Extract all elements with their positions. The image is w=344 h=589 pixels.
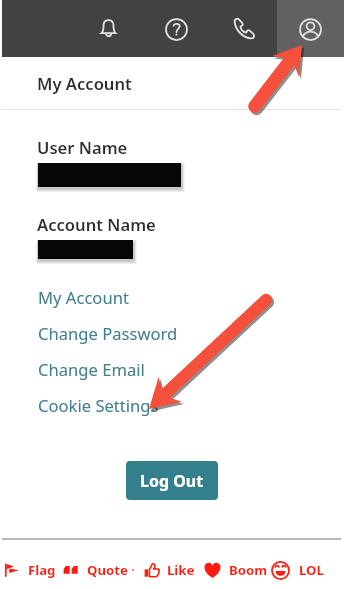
- staticText: My Account: [37, 72, 132, 95]
- button[interactable]: LOL: [271, 557, 324, 583]
- button[interactable]: Quote: [63, 557, 128, 583]
- staticText: Boom: [229, 561, 268, 579]
- button[interactable]: Cookie Settings: [28, 390, 169, 421]
- button[interactable]: Like: [144, 557, 195, 583]
- staticText: Log Out: [140, 470, 204, 492]
- button[interactable]: Account: [276, 0, 344, 57]
- staticText: Flag: [28, 561, 56, 579]
- staticText: ·: [131, 560, 135, 579]
- staticText: Change Email: [38, 358, 145, 381]
- staticText: My Account: [38, 286, 129, 309]
- staticText: Like: [167, 561, 195, 579]
- button[interactable]: My Account: [28, 282, 139, 313]
- staticText: User Name: [37, 136, 128, 159]
- staticText: Cookie Settings: [38, 394, 159, 417]
- button[interactable]: Call: [209, 0, 277, 57]
- button[interactable]: Log Out: [126, 461, 218, 500]
- button[interactable]: Flag: [4, 557, 56, 583]
- staticText: LOL: [299, 561, 324, 579]
- staticText: Account Name: [37, 213, 156, 236]
- staticText: Quote: [87, 561, 128, 579]
- button[interactable]: Change Email: [28, 354, 155, 385]
- button[interactable]: Notifications: [74, 0, 142, 57]
- button[interactable]: Help: [142, 0, 210, 57]
- button[interactable]: Boom: [203, 557, 268, 583]
- staticText: Change Password: [38, 322, 178, 345]
- button[interactable]: Change Password: [28, 318, 188, 349]
